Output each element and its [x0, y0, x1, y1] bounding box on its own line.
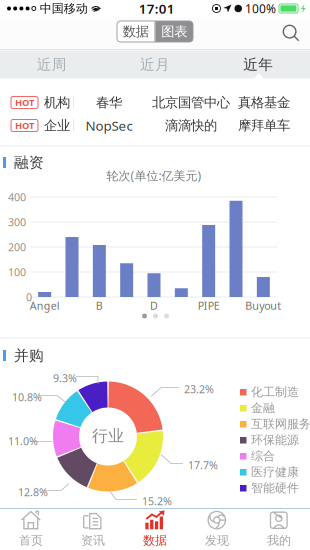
staticText: 金融 [251, 401, 275, 415]
staticText: NopSec [85, 117, 132, 134]
button[interactable]: 资讯 [62, 508, 124, 550]
staticText: Angel [30, 298, 60, 313]
staticText: D [150, 298, 158, 313]
button[interactable]: 近月 [103, 50, 207, 78]
staticText: 400 [8, 190, 26, 204]
staticText: PIPE [198, 298, 220, 313]
staticText: 行业 [92, 426, 124, 446]
staticText: 资讯 [81, 533, 105, 548]
button[interactable]: 发现 [186, 508, 248, 550]
staticText: 100 [8, 265, 26, 279]
staticText: 12.8% [18, 485, 48, 499]
staticText: 摩拜单车 [238, 117, 290, 134]
staticText: 近月 [140, 55, 170, 73]
staticText: 300 [8, 215, 26, 229]
staticText: 机构 [44, 94, 70, 111]
button[interactable]: 真格基金 [237, 91, 291, 114]
staticText: 10.8% [12, 390, 42, 404]
staticText: 融资 [14, 153, 44, 171]
button[interactable]: 数据 [117, 21, 193, 42]
staticText: 近年 [243, 55, 273, 73]
staticText: 企业 [44, 117, 70, 134]
staticText: 轮次(单位:亿美元) [106, 167, 201, 183]
button[interactable]: 滴滴快的 [151, 114, 231, 137]
staticText: 17.7% [188, 458, 218, 472]
button[interactable]: 数据 [124, 508, 186, 550]
staticText: HOT [15, 96, 34, 109]
staticText: 并购 [14, 346, 44, 364]
staticText: 100% [245, 0, 276, 16]
staticText: B [96, 298, 103, 313]
button[interactable]: 近年 [207, 50, 310, 78]
button[interactable]: 近周 [0, 50, 103, 78]
staticText: 11.0% [8, 434, 38, 448]
staticText: 0 [26, 290, 32, 304]
staticText: 真格基金 [238, 94, 290, 111]
staticText: 环保能源 [251, 433, 299, 447]
button[interactable]: Search [278, 20, 304, 46]
staticText: 中国移动 [40, 1, 88, 16]
staticText: 近周 [37, 55, 67, 73]
staticText: 数据 [143, 533, 167, 548]
button[interactable]: 首页 [0, 508, 62, 550]
button[interactable]: 我的 [248, 508, 310, 550]
staticText: 9.3% [53, 371, 77, 385]
staticText: 智能硬件 [251, 481, 299, 495]
staticText: 17:01 [139, 0, 175, 17]
staticText: 23.2% [184, 382, 214, 396]
staticText: 医疗健康 [251, 465, 299, 479]
staticText: 首页 [19, 533, 43, 548]
button[interactable]: 春华 [85, 91, 133, 114]
staticText: 北京国管中心 [152, 94, 230, 111]
button[interactable]: NopSec [85, 114, 133, 137]
staticText: 图表 [161, 23, 187, 40]
staticText: 我的 [267, 533, 291, 548]
staticText: 互联网服务 [251, 417, 310, 431]
staticText: 春华 [96, 94, 122, 111]
staticText: HOT [15, 119, 34, 132]
staticText: 滴滴快的 [165, 117, 217, 134]
button[interactable]: 北京国管中心 [151, 91, 231, 114]
button[interactable]: 摩拜单车 [237, 114, 291, 137]
staticText: 化工制造 [251, 385, 299, 399]
staticText: 200 [8, 240, 26, 254]
staticText: 综合 [251, 449, 275, 463]
staticText: Buyout [245, 298, 281, 313]
staticText: 数据 [123, 23, 149, 40]
staticText: 15.2% [142, 494, 172, 508]
staticText: 发现 [205, 533, 229, 548]
